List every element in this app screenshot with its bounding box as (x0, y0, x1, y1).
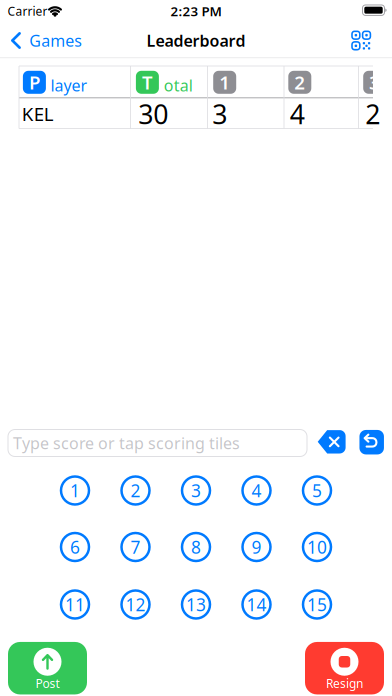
button[interactable]: Post (8, 642, 87, 694)
button[interactable]: 14 (241, 589, 272, 620)
staticText: 1 (219, 70, 230, 95)
staticText: 2 (130, 479, 140, 502)
staticText: 1 (70, 479, 80, 502)
button[interactable]: 15 (301, 589, 332, 620)
staticText: 3 (369, 70, 380, 95)
button[interactable]: 8 (180, 531, 211, 562)
staticText: 12 (125, 593, 145, 616)
staticText: 9 (251, 535, 261, 558)
staticText: 6 (70, 535, 80, 558)
staticText: Games (29, 30, 82, 51)
staticText: 13 (186, 593, 206, 616)
button[interactable]: 5 (301, 475, 332, 506)
button[interactable]: 7 (120, 531, 151, 562)
staticText: 4 (290, 96, 305, 131)
staticText: 10 (307, 535, 327, 558)
staticText: Type score or tap scoring tiles (13, 432, 240, 454)
button[interactable]: Games (11, 25, 82, 55)
staticText: 4 (251, 479, 261, 502)
staticText: T (142, 70, 153, 95)
staticText: 14 (246, 593, 266, 616)
button[interactable]: Delete (317, 430, 347, 455)
button[interactable]: 1 (59, 475, 90, 506)
staticText: 2 (294, 70, 305, 95)
button[interactable]: 6 (59, 531, 90, 562)
button[interactable]: 3 (180, 475, 211, 506)
button[interactable]: Type score or tap scoring tiles (8, 429, 307, 456)
staticText: 3 (212, 96, 227, 131)
button[interactable]: 4 (241, 475, 272, 506)
button[interactable]: 13 (180, 589, 211, 620)
staticText: KEL (22, 101, 54, 126)
staticText: 5 (312, 479, 322, 502)
staticText: 30 (138, 96, 168, 131)
button[interactable]: 2 (120, 475, 151, 506)
button[interactable]: 11 (59, 589, 90, 620)
staticText: Post (35, 675, 59, 691)
staticText: 8 (191, 535, 201, 558)
staticText: 3 (191, 479, 201, 502)
staticText: 7 (130, 535, 140, 558)
button[interactable]: 9 (241, 531, 272, 562)
staticText: Leaderboard (146, 30, 245, 51)
button[interactable]: 12 (120, 589, 151, 620)
staticText: P (29, 70, 40, 95)
staticText: 11 (65, 593, 85, 616)
staticText: 2 (365, 96, 380, 131)
button[interactable]: Undo (359, 430, 384, 455)
staticText: Carrier (7, 3, 47, 19)
staticText: 2:23 PM (170, 2, 221, 20)
button[interactable]: QR Code (350, 29, 373, 52)
staticText: layer (50, 75, 87, 96)
button[interactable]: Resign (305, 642, 384, 694)
staticText: otal (164, 75, 193, 96)
button[interactable]: 10 (301, 531, 332, 562)
staticText: 15 (307, 593, 327, 616)
staticText: Resign (326, 675, 363, 691)
